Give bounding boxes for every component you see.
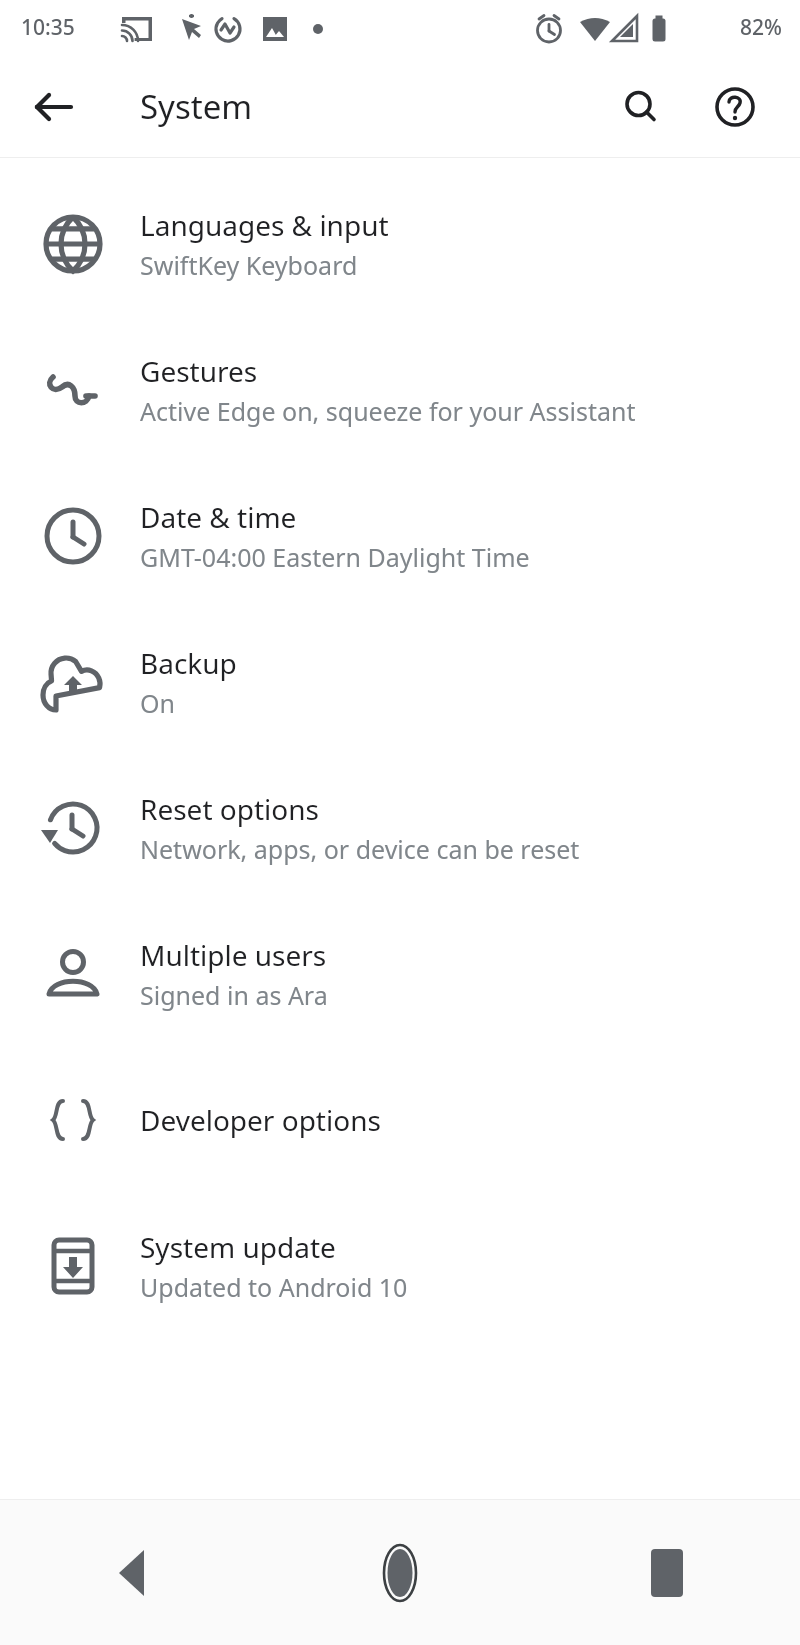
staticText: Multiple users [140,936,327,974]
button[interactable]: Multiple users [0,901,800,1047]
button[interactable]: Recent apps [533,1500,800,1645]
staticText: Gestures [140,352,258,390]
staticText: Updated to Android 10 [140,1270,408,1304]
staticText: Languages & input [140,206,389,244]
staticText: SwiftKey Keyboard [140,248,358,282]
button[interactable]: Developer options [0,1047,800,1193]
staticText: Signed in as Ara [140,978,328,1012]
button[interactable]: System update [0,1193,800,1339]
button[interactable]: Help [704,76,766,138]
staticText: Date & time [140,498,297,536]
button[interactable]: Back [14,67,94,147]
staticText: GMT-04:00 Eastern Daylight Time [140,540,530,574]
button[interactable]: Search [610,76,672,138]
button[interactable]: Back [0,1500,266,1645]
staticText: Active Edge on, squeeze for your Assista… [140,394,636,428]
staticText: Reset options [140,790,319,828]
button[interactable]: Backup [0,609,800,755]
staticText: Developer options [140,1101,381,1139]
staticText: System update [140,1228,336,1266]
staticText: 10:35 [21,13,75,42]
button[interactable]: Date & time [0,463,800,609]
staticText: System [140,84,253,129]
staticText: On [140,686,175,720]
button[interactable]: Gestures [0,317,800,463]
staticText: 82% [740,13,782,42]
button[interactable]: Home [266,1500,533,1645]
staticText: Network, apps, or device can be reset [140,832,580,866]
staticText: Backup [140,644,237,682]
button[interactable]: Languages & input [0,171,800,317]
button[interactable]: Reset options [0,755,800,901]
